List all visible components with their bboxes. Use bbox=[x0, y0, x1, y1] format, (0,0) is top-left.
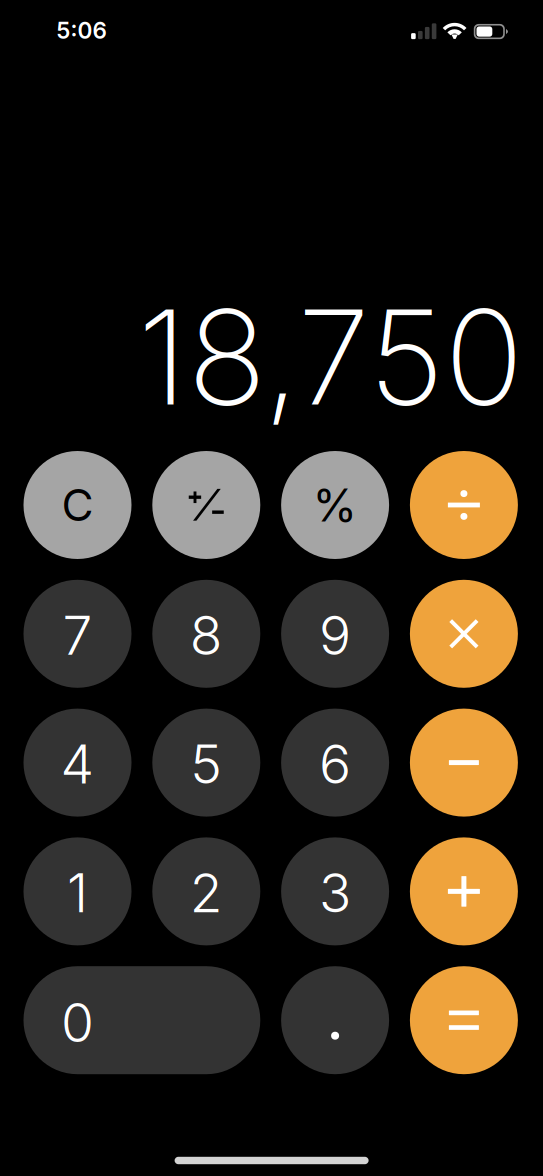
button[interactable]: Divide bbox=[410, 451, 518, 559]
button[interactable]: 0 bbox=[23, 966, 260, 1074]
button[interactable]: Decimal point bbox=[281, 966, 389, 1074]
staticText: 7 bbox=[62, 603, 92, 667]
staticText: 0 bbox=[61, 990, 94, 1055]
button[interactable]: Multiply bbox=[410, 580, 518, 688]
button[interactable]: 3 bbox=[281, 837, 389, 945]
button[interactable]: Equals bbox=[410, 966, 518, 1074]
staticText: 9 bbox=[319, 603, 351, 667]
staticText: 8 bbox=[190, 603, 223, 667]
button[interactable]: 7 bbox=[23, 580, 131, 688]
button[interactable]: 1 bbox=[23, 837, 131, 945]
staticText: 5 bbox=[190, 732, 222, 796]
button[interactable]: C bbox=[23, 451, 131, 559]
staticText: 4 bbox=[60, 732, 94, 796]
staticText: 3 bbox=[319, 861, 351, 925]
button[interactable]: 4 bbox=[23, 709, 131, 817]
button[interactable]: 9 bbox=[281, 580, 389, 688]
staticText: 6 bbox=[319, 732, 351, 796]
staticText: C bbox=[61, 478, 93, 532]
staticText: 18,750 bbox=[137, 278, 523, 436]
staticText: % bbox=[313, 478, 358, 532]
staticText: 2 bbox=[190, 861, 223, 925]
button[interactable]: Plus Minus bbox=[152, 451, 260, 559]
button[interactable]: 2 bbox=[152, 837, 260, 945]
button[interactable]: Plus bbox=[410, 837, 518, 945]
button[interactable]: % bbox=[281, 451, 389, 559]
button[interactable]: 6 bbox=[281, 709, 389, 817]
staticText: 5:06 bbox=[56, 17, 106, 44]
button[interactable]: 5 bbox=[152, 709, 260, 817]
button[interactable]: 8 bbox=[152, 580, 260, 688]
button[interactable]: Minus bbox=[410, 709, 518, 817]
staticText: 1 bbox=[67, 861, 88, 925]
